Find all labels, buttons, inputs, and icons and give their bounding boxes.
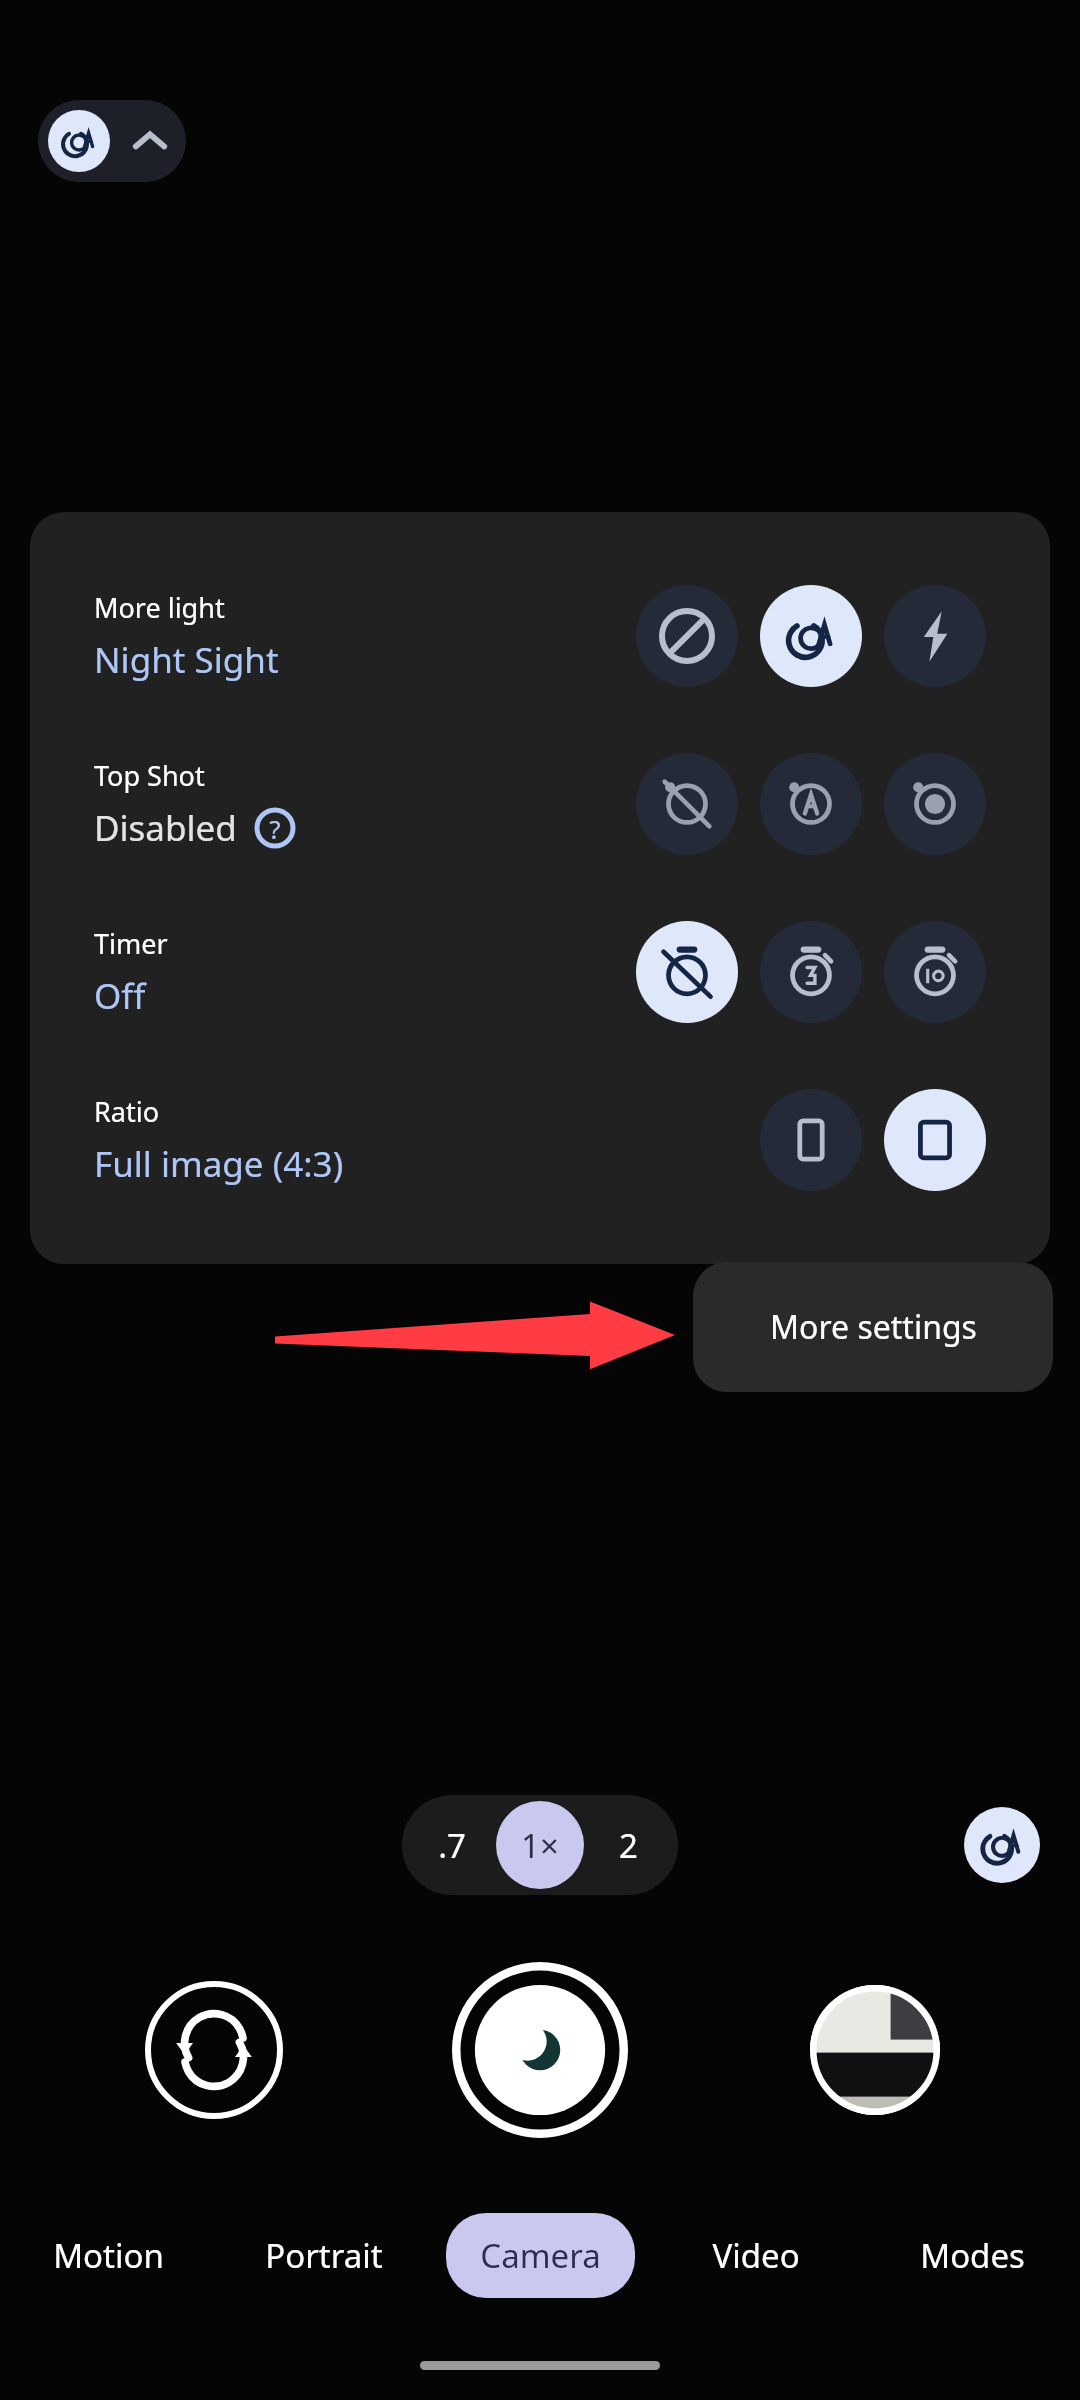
button[interactable]: Night Sight auto: [964, 1807, 1040, 1883]
button[interactable]: 2: [584, 1801, 672, 1889]
staticText: Top Shot: [94, 757, 205, 794]
staticText: Off: [94, 972, 146, 1020]
other: Collapse: [124, 115, 176, 167]
button[interactable]: Option: [760, 921, 862, 1023]
staticText: Ratio: [94, 1093, 159, 1130]
staticText: Disabled: [94, 804, 237, 852]
button[interactable]: Option: [884, 753, 986, 855]
button[interactable]: Option: [760, 1089, 862, 1191]
staticText: 1×: [521, 1823, 559, 1868]
button[interactable]: More settings: [693, 1262, 1053, 1392]
button[interactable]: Motion: [19, 2213, 198, 2298]
button[interactable]: Option: [636, 921, 738, 1023]
button[interactable]: Top Shot: [30, 720, 1050, 888]
button[interactable]: Night Sight auto: [38, 100, 186, 182]
button[interactable]: Portrait: [231, 2213, 417, 2298]
button[interactable]: Option: [636, 753, 738, 855]
button[interactable]: Shutter: [452, 1962, 628, 2138]
staticText: Camera: [480, 2233, 601, 2278]
button[interactable]: More light: [30, 552, 1050, 720]
button[interactable]: Switch camera: [144, 1980, 284, 2120]
staticText: Motion: [53, 2233, 164, 2278]
staticText: Timer: [94, 925, 168, 962]
button[interactable]: Camera: [446, 2213, 635, 2298]
button[interactable]: Timer: [30, 888, 1050, 1056]
button[interactable]: Last photo: [810, 1985, 940, 2115]
button[interactable]: Option: [760, 585, 862, 687]
staticText: 2: [619, 1823, 638, 1868]
staticText: ?: [269, 811, 281, 846]
staticText: .7: [438, 1823, 466, 1868]
staticText: Full image (4:3): [94, 1140, 344, 1188]
button[interactable]: Help: [253, 806, 297, 850]
button[interactable]: Option: [884, 921, 986, 1023]
button[interactable]: .7: [408, 1801, 496, 1889]
staticText: More light: [94, 589, 225, 626]
button[interactable]: Option: [760, 753, 862, 855]
staticText: Video: [712, 2233, 800, 2278]
staticText: More settings: [770, 1305, 977, 1349]
button[interactable]: Option: [884, 1089, 986, 1191]
staticText: Portrait: [265, 2233, 383, 2278]
button[interactable]: Video: [678, 2213, 834, 2298]
button[interactable]: Modes: [886, 2213, 1059, 2298]
staticText: Modes: [920, 2233, 1025, 2278]
button[interactable]: Option: [636, 585, 738, 687]
staticText: Night Sight: [94, 636, 279, 684]
button[interactable]: 1×: [496, 1801, 584, 1889]
button[interactable]: Ratio: [30, 1056, 1050, 1224]
button[interactable]: Option: [884, 585, 986, 687]
other: Night Sight auto: [48, 110, 110, 172]
